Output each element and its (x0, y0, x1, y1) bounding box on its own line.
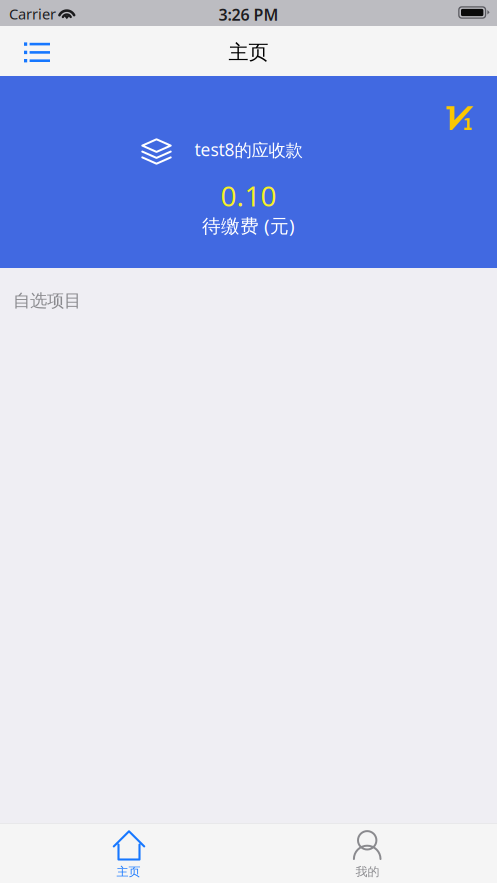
staticText: 3:26 PM (218, 4, 278, 25)
staticText: 主页 (116, 864, 140, 879)
staticText: 待缴费 (元) (202, 213, 295, 238)
button[interactable]: 主页 (0, 823, 248, 883)
staticText: Carrier (9, 4, 56, 23)
staticText: 0.10 (220, 177, 276, 214)
staticText: 主页 (228, 40, 268, 65)
staticText: 自选项目 (13, 290, 81, 311)
button[interactable]: Menu (0, 26, 66, 76)
staticText: 我的 (355, 864, 379, 879)
staticText: test8的应收款 (194, 138, 302, 161)
button[interactable]: 我的 (248, 823, 497, 883)
